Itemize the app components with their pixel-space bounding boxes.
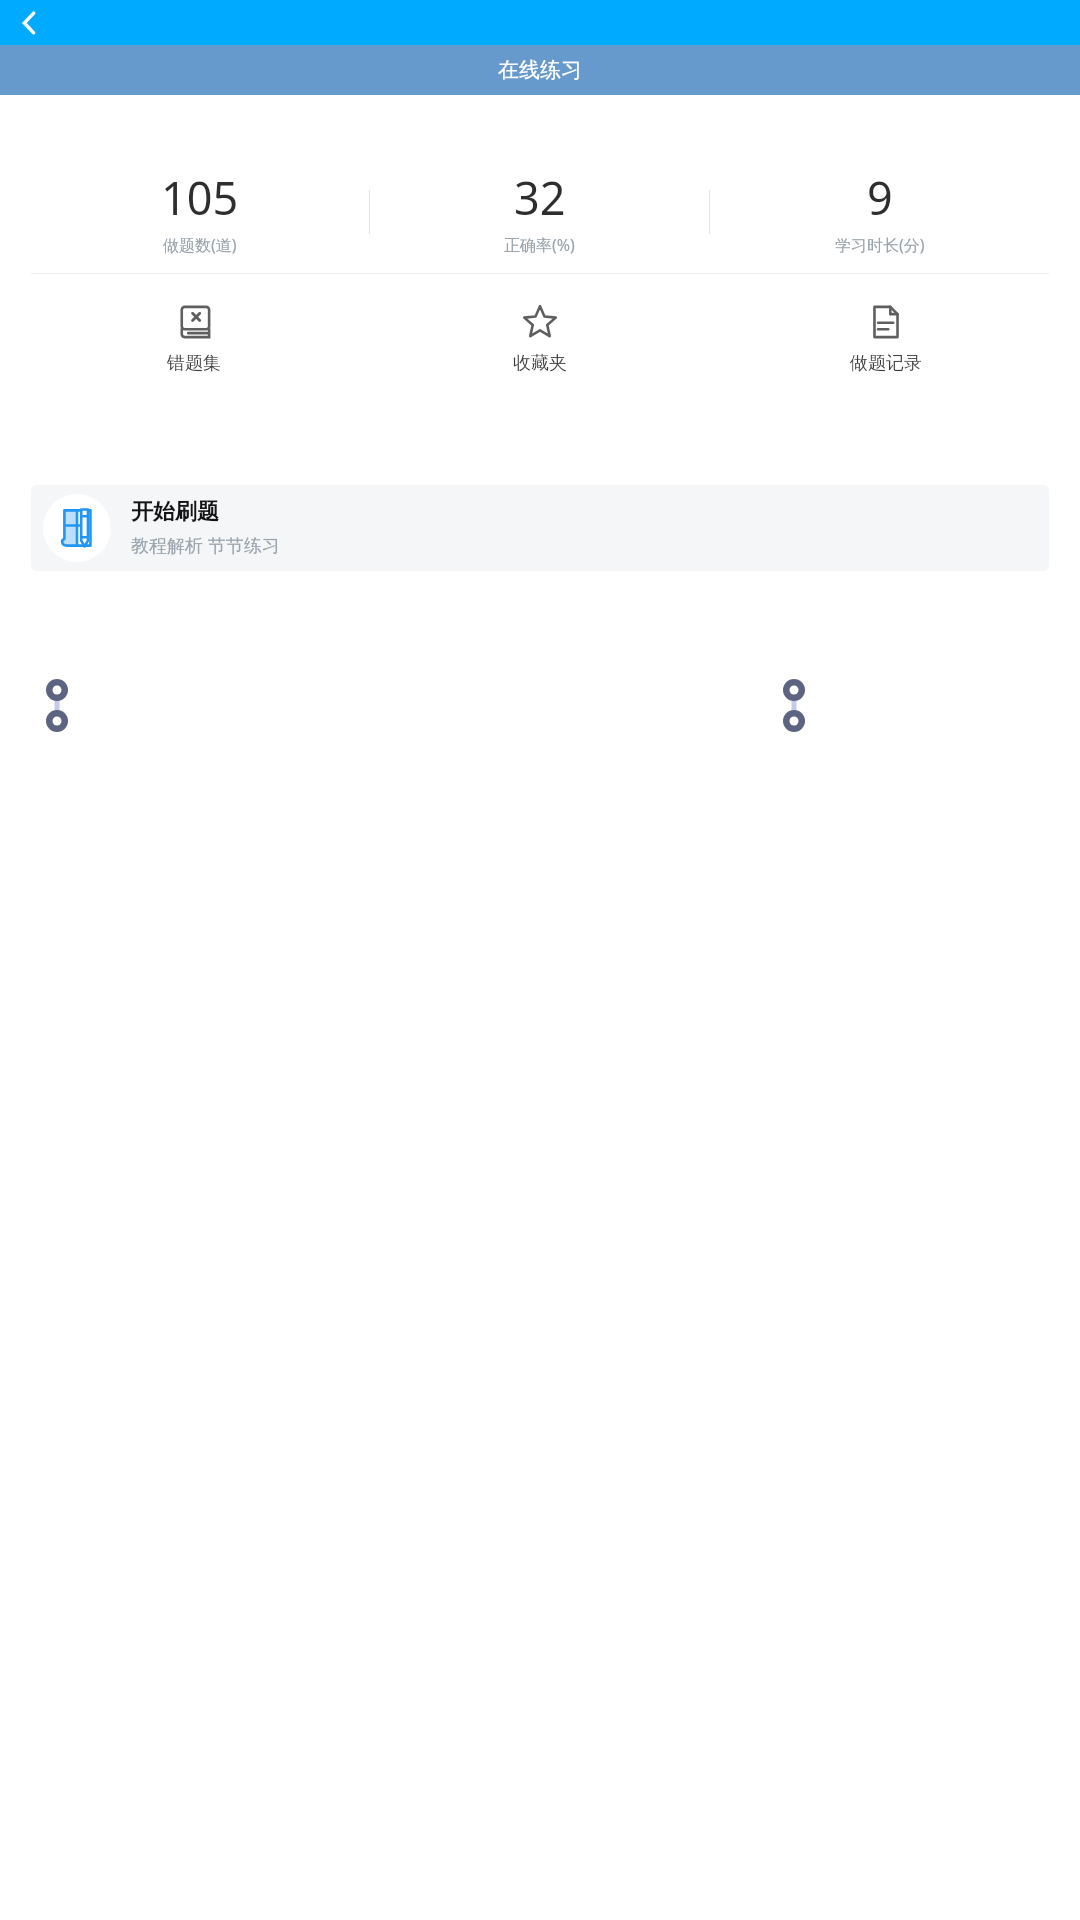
button[interactable]: 收藏夹: [367, 302, 713, 377]
staticText: 32: [514, 167, 566, 228]
staticText: 学习时长(分): [835, 234, 925, 256]
button[interactable]: Back: [6, 0, 52, 45]
staticText: 9: [867, 167, 893, 228]
staticText: 收藏夹: [513, 352, 567, 375]
button[interactable]: 开始刷题: [31, 485, 1049, 571]
staticText: 正确率(%): [504, 234, 575, 256]
button[interactable]: 做题记录: [713, 302, 1059, 377]
staticText: 做题数(道): [163, 234, 237, 256]
staticText: 开始刷题: [131, 498, 219, 526]
staticText: 105: [161, 167, 239, 228]
staticText: 教程解析 节节练习: [131, 533, 280, 558]
button[interactable]: 错题集: [21, 302, 367, 377]
staticText: 做题记录: [850, 352, 922, 375]
staticText: 在线练习: [498, 57, 582, 83]
staticText: 错题集: [167, 352, 221, 375]
